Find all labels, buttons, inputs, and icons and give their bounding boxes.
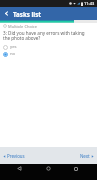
button[interactable]: Next <box>76 151 97 161</box>
staticText: no <box>10 51 16 57</box>
staticText: yes <box>10 44 17 50</box>
button[interactable]: Recents <box>62 164 90 173</box>
staticText: Previous <box>7 153 25 159</box>
staticText: 11:43 <box>84 1 95 6</box>
button[interactable]: Previous <box>0 151 29 161</box>
staticText: Tasks list <box>13 10 41 18</box>
button[interactable]: Home <box>34 164 62 173</box>
button[interactable]: Back <box>5 164 34 173</box>
staticText: Next <box>80 153 90 159</box>
button[interactable]: no <box>0 51 97 57</box>
staticText: 3: Did you have any errors with taking t… <box>3 30 92 41</box>
button[interactable]: Back <box>0 7 13 20</box>
button[interactable]: yes <box>0 44 97 50</box>
staticText: Multiple Choice <box>8 24 38 28</box>
